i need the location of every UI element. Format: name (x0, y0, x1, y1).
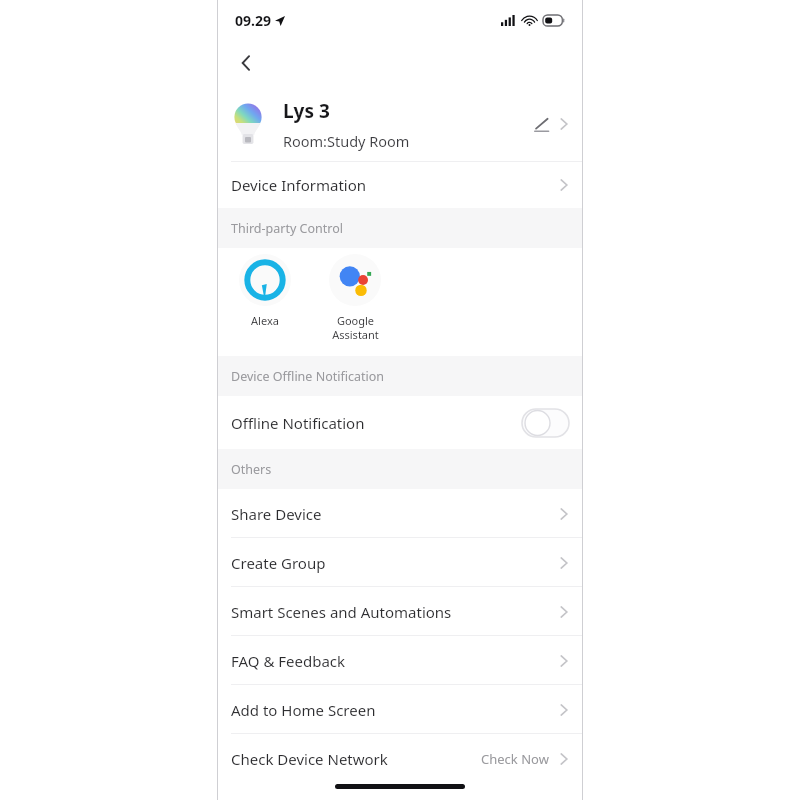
staticText: Offline Notification (231, 413, 365, 433)
staticText: Google Assistant (332, 313, 379, 342)
button[interactable]: Smart Scenes and Automations (217, 587, 583, 636)
staticText: Others (231, 461, 272, 478)
button[interactable]: Share Device (217, 489, 583, 538)
button[interactable]: Add to Home Screen (217, 685, 583, 734)
staticText: Third-party Control (231, 220, 343, 237)
staticText: Room:Study Room (283, 131, 410, 151)
button[interactable]: Device Information (217, 162, 583, 208)
button[interactable]: Google Assistant (313, 254, 397, 342)
button[interactable]: Alexa (223, 254, 307, 328)
staticText: Device Information (231, 175, 367, 195)
staticText: FAQ & Feedback (231, 651, 346, 671)
button[interactable]: Check Device Network (217, 734, 583, 783)
button[interactable]: Back (223, 40, 269, 86)
button[interactable]: Create Group (217, 538, 583, 587)
staticText: 09.29 (235, 11, 271, 30)
button[interactable]: Lys 3 (217, 86, 583, 162)
button[interactable]: FAQ & Feedback (217, 636, 583, 685)
staticText: Lys 3 (283, 98, 330, 124)
staticText: Alexa (251, 313, 279, 328)
staticText: Add to Home Screen (231, 700, 376, 720)
staticText: Check Now (481, 750, 549, 768)
staticText: Create Group (231, 553, 326, 573)
staticText: Device Offline Notification (231, 368, 385, 385)
button[interactable]: Offline Notification (217, 396, 583, 449)
staticText: Check Device Network (231, 749, 388, 769)
staticText: Share Device (231, 504, 322, 524)
staticText: Smart Scenes and Automations (231, 602, 452, 622)
